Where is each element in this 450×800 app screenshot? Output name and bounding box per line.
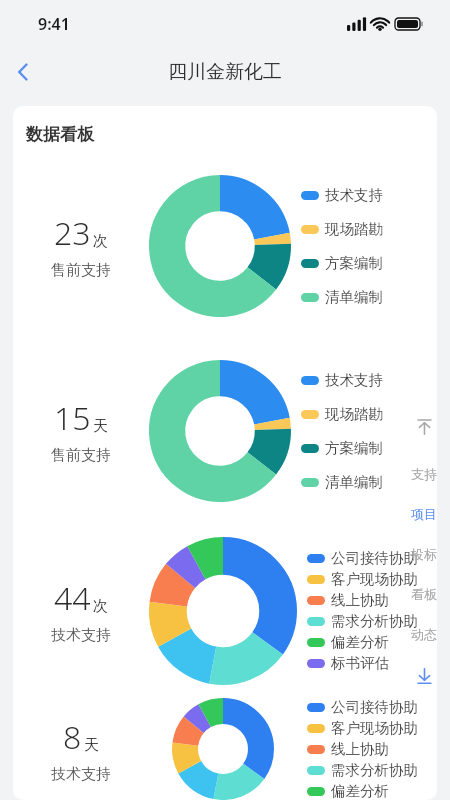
button[interactable]: Back — [0, 49, 46, 95]
button[interactable]: 现场踏勘 — [301, 220, 383, 238]
staticText: 公司接待协助 — [331, 698, 418, 716]
staticText: 需求分析协助 — [331, 612, 418, 630]
button[interactable]: 看板 — [404, 574, 444, 614]
button[interactable]: 需求分析协助 — [307, 612, 418, 630]
staticText: 天 — [84, 736, 99, 755]
button[interactable]: 方案编制 — [301, 439, 383, 457]
staticText: 技术支持 — [51, 765, 111, 784]
button[interactable]: 技术支持 — [301, 371, 383, 389]
staticText: 现场踏勘 — [325, 220, 383, 238]
staticText: 8 — [63, 715, 82, 759]
staticText: 偏差分析 — [331, 633, 389, 651]
staticText: 四川金新化工 — [168, 60, 282, 84]
staticText: 售前支持 — [51, 446, 111, 465]
button[interactable]: 动态 — [404, 614, 444, 654]
staticText: 售前支持 — [51, 261, 111, 280]
button[interactable]: 标书评估 — [307, 654, 389, 672]
button[interactable]: 偏差分析 — [307, 782, 389, 800]
staticText: 清单编制 — [325, 473, 383, 491]
staticText: 投标 — [411, 546, 437, 562]
staticText: 支持 — [411, 466, 437, 482]
button[interactable]: Scroll up — [406, 408, 442, 444]
button[interactable]: 公司接待协助 — [307, 549, 418, 567]
staticText: 方案编制 — [325, 254, 383, 272]
staticText: 线上协助 — [331, 591, 389, 609]
button[interactable]: 投标 — [404, 534, 444, 574]
button[interactable]: 线上协助 — [307, 591, 389, 609]
staticText: 标书评估 — [331, 654, 389, 672]
staticText: 清单编制 — [325, 288, 383, 306]
staticText: 看板 — [411, 586, 437, 602]
staticText: 项目 — [411, 506, 437, 522]
staticText: 23 — [54, 211, 91, 255]
staticText: 客户现场协助 — [331, 719, 418, 737]
staticText: 数据看板 — [26, 124, 94, 145]
button[interactable]: 支持 — [404, 454, 444, 494]
staticText: 需求分析协助 — [331, 761, 418, 779]
button[interactable]: 技术支持 — [301, 186, 383, 204]
staticText: 天 — [93, 417, 108, 436]
staticText: 方案编制 — [325, 439, 383, 457]
staticText: 技术支持 — [51, 626, 111, 645]
staticText: 15 — [54, 396, 91, 440]
staticText: 44 — [54, 576, 91, 620]
button[interactable]: 偏差分析 — [307, 633, 389, 651]
button[interactable]: 公司接待协助 — [307, 698, 418, 716]
staticText: 线上协助 — [331, 740, 389, 758]
staticText: 次 — [93, 597, 108, 616]
button[interactable]: 清单编制 — [301, 473, 383, 491]
button[interactable]: Scroll down — [406, 658, 442, 694]
staticText: 次 — [93, 232, 108, 251]
button[interactable]: 清单编制 — [301, 288, 383, 306]
button[interactable]: 现场踏勘 — [301, 405, 383, 423]
button[interactable]: 客户现场协助 — [307, 719, 418, 737]
staticText: 动态 — [411, 626, 437, 642]
staticText: 客户现场协助 — [331, 570, 418, 588]
staticText: 公司接待协助 — [331, 549, 418, 567]
button[interactable]: 需求分析协助 — [307, 761, 418, 779]
button[interactable]: 线上协助 — [307, 740, 389, 758]
button[interactable]: 方案编制 — [301, 254, 383, 272]
staticText: 技术支持 — [325, 371, 383, 389]
staticText: 技术支持 — [325, 186, 383, 204]
button[interactable]: 项目 — [404, 494, 444, 534]
staticText: 9:41 — [38, 13, 70, 35]
button[interactable]: 客户现场协助 — [307, 570, 418, 588]
staticText: 现场踏勘 — [325, 405, 383, 423]
staticText: 偏差分析 — [331, 782, 389, 800]
